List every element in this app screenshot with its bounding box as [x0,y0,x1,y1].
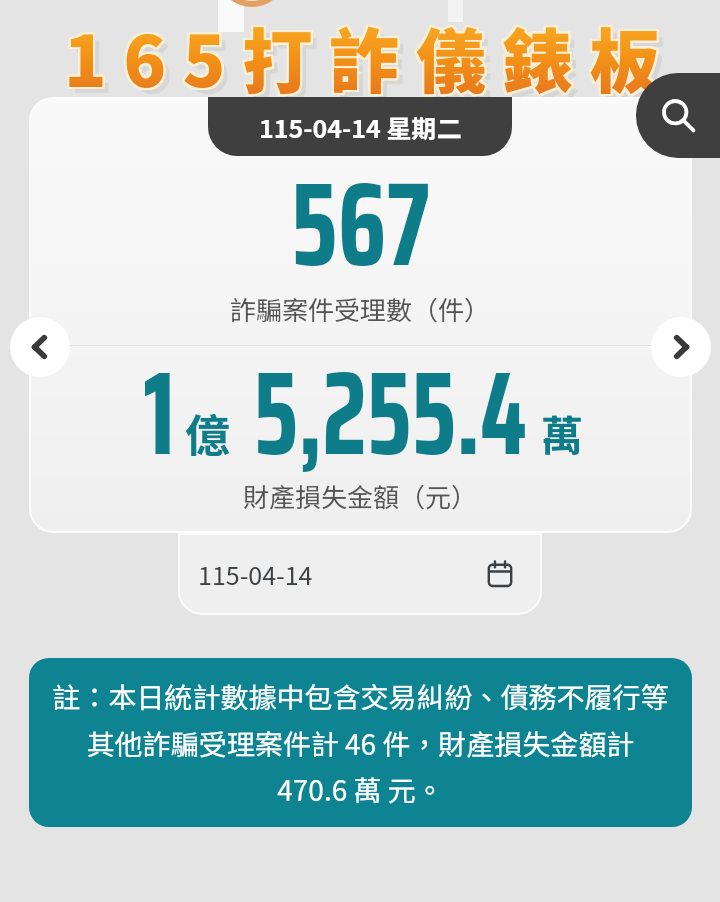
staticText: 165打詐儀錶板 [62,4,675,105]
staticText: 1 [143,320,176,506]
staticText: 詐騙案件受理數（件） [230,290,491,328]
staticText: 567 [291,131,430,317]
button[interactable]: Next date [651,317,711,377]
staticText: 萬 [541,402,584,463]
staticText: 165打詐儀錶板 [64,6,677,107]
staticText: 註：本日統計數據中包含交易糾紛、債務不履行等 其他詐騙受理案件計 46 件，財產… [29,676,692,809]
staticText: 165打詐儀錶板 [66,4,679,105]
button[interactable]: 115-04-14 星期二 [208,97,512,156]
staticText: 165打詐儀錶板 [64,4,677,105]
staticText: 億 [185,400,231,465]
button[interactable]: Search [636,73,720,158]
staticText: 165打詐儀錶板 [64,8,677,109]
button[interactable]: Previous date [10,317,70,377]
button[interactable]: 115-04-14 [178,533,542,615]
staticText: 165打詐儀錶板 [62,6,675,107]
staticText: 5,255.4 [253,320,527,506]
staticText: 財產損失金額（元） [243,477,478,515]
staticText: 115-04-14 [198,556,313,592]
staticText: 165打詐儀錶板 [62,8,675,109]
staticText: 115-04-14 星期二 [259,109,462,145]
staticText: 165打詐儀錶板 [66,6,679,107]
staticText: 165打詐儀錶板 [70,12,683,113]
staticText: 165打詐儀錶板 [66,8,679,109]
